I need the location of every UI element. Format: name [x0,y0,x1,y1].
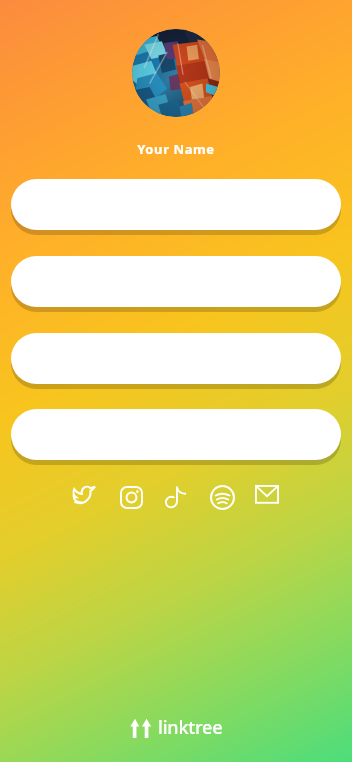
button[interactable]: Twitter [66,478,104,516]
button[interactable]: Link four [11,409,341,460]
staticText: Your Name [137,140,215,158]
button[interactable]: Spotify [203,478,241,516]
button[interactable]: linktree [122,709,231,746]
button[interactable]: Profile picture [132,29,220,117]
button[interactable]: Email [248,478,286,516]
button[interactable]: Link one [11,179,341,230]
button[interactable]: Instagram [112,478,150,516]
staticText: linktree [158,715,223,740]
button[interactable]: Link three [11,333,341,384]
button[interactable]: TikTok [157,478,195,516]
button[interactable]: Link two [11,256,341,307]
